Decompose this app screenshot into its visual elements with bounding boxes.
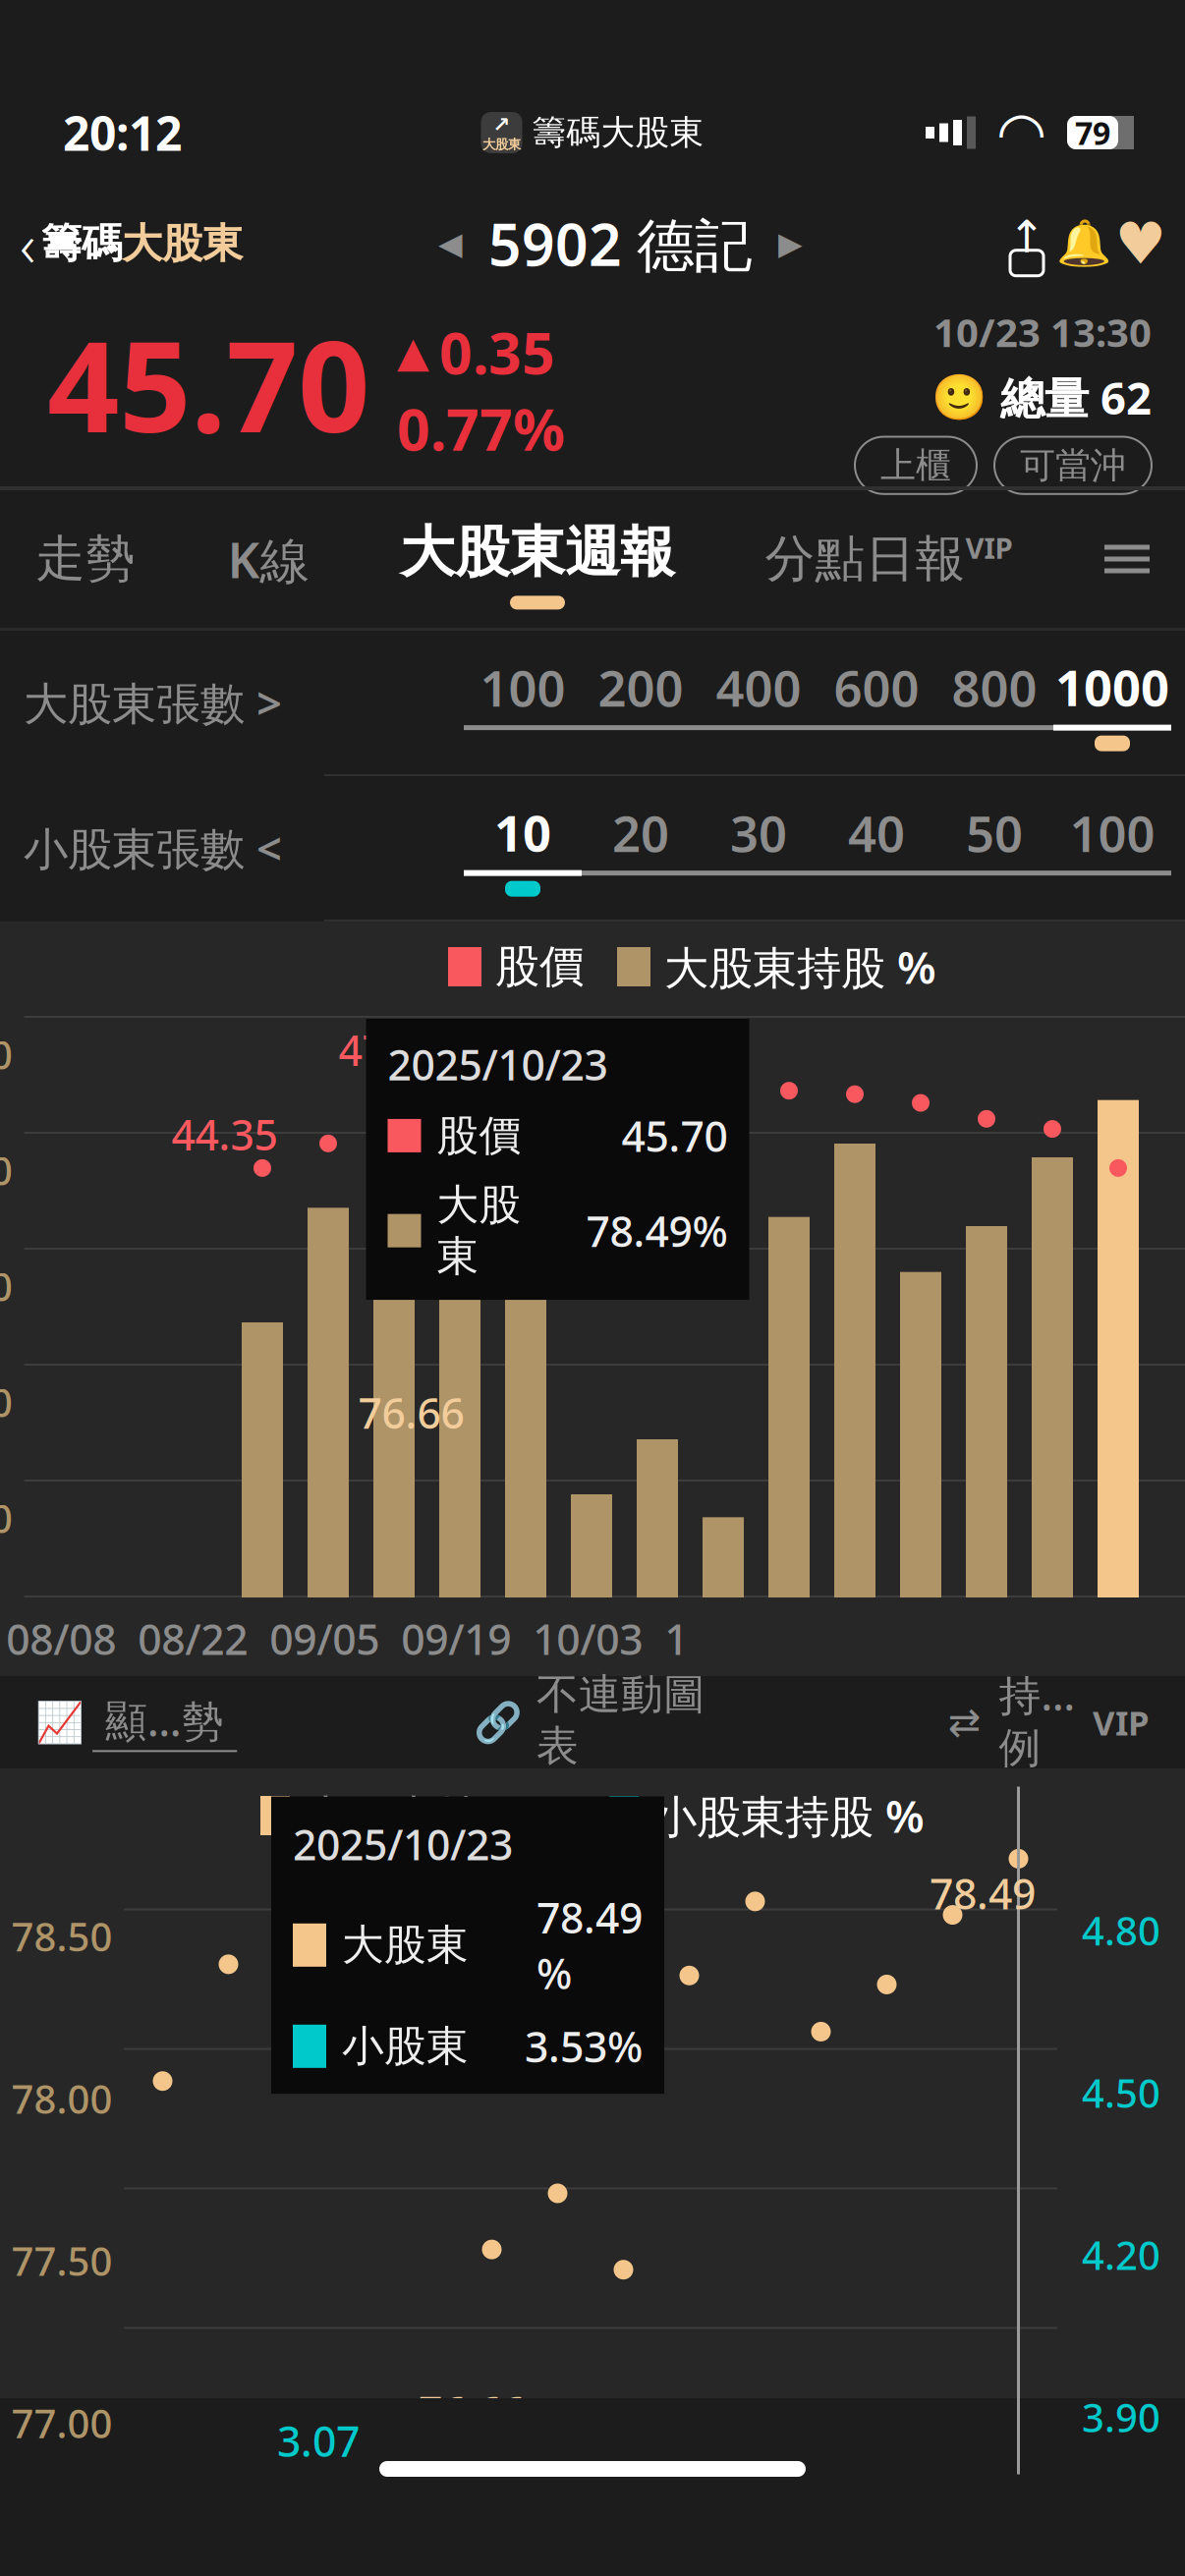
staticText: 0.77% [397,390,565,467]
staticText: 78.00 [11,2072,113,2125]
staticText: 分點日報 [765,528,965,590]
button[interactable]: Notifications [1055,212,1112,275]
staticText: 股價 [437,1110,521,1161]
staticText: VIP [1093,1700,1150,1745]
staticText: 78.49% [586,1203,728,1259]
staticText: ↑ [1008,212,1045,262]
staticText: 🔔 [1056,218,1111,269]
button[interactable]: Previous stock [423,208,479,279]
staticText: 79 [1075,112,1110,154]
button[interactable]: 分點日報 [753,513,1024,605]
staticText: 0.35 [439,314,555,390]
staticText: 44.35 [171,1106,278,1162]
staticText: 08/08 [6,1611,116,1667]
staticText: 10 [494,799,551,865]
staticText: 40 [848,800,905,866]
staticText: 77.00 [0,1376,13,1428]
staticText: ♥ [1115,211,1167,276]
staticText: 小股東張數 < [24,818,282,877]
staticText: 77.50 [11,2235,113,2287]
staticText: 小股東 [342,2021,469,2072]
button[interactable]: ‹ [0,192,243,295]
staticText: ⇄ [948,1700,981,1745]
button[interactable]: Menu [1093,525,1161,593]
staticText: 47.40 [339,1022,445,1077]
staticText: 10/23 13:30 [933,306,1152,358]
staticText: 顯…勢 [105,1692,224,1748]
staticText: 78.50 [0,1028,13,1080]
staticText: 大股東張數 > [24,673,282,732]
staticText: 4.50 [1082,2066,1160,2119]
staticText: 78.00 [0,1144,13,1196]
button[interactable]: ⇄ [948,1651,1150,1794]
button[interactable]: 100 [1053,800,1171,896]
staticText: ‹ [20,204,35,284]
staticText: ◀ [438,226,463,261]
staticText: 籌碼 [41,219,122,269]
button[interactable]: 50 [935,800,1053,896]
staticText: 09/19 [401,1611,511,1667]
staticText: ▶ [778,226,803,261]
staticText: ◠ [999,100,1044,165]
staticText: 大股東 [482,136,521,153]
button[interactable]: 大股東週報 [390,509,685,610]
staticText: 30 [730,800,787,866]
staticText: 5902 德記 [488,205,753,282]
staticText: 08/22 [138,1611,248,1667]
button[interactable]: 800 [935,654,1053,751]
staticText: 20 [612,800,669,866]
button[interactable]: 20 [582,800,700,896]
button[interactable]: 40 [818,800,935,896]
staticText: 🔗 [474,1700,523,1745]
staticText: 持…例 [999,1667,1075,1774]
staticText: 20:12 [63,101,182,164]
staticText: 50 [966,800,1023,866]
staticText: 小股東持股 % [652,1786,925,1845]
staticText: 大股東持股 % [664,937,936,996]
staticText: 可當沖 [1020,444,1126,487]
staticText: 籌碼大股東 [532,112,704,154]
staticText: 600 [834,654,919,720]
staticText: 45.70 [47,300,369,467]
button[interactable]: 600 [818,654,935,751]
staticText: 3.90 [1082,2391,1160,2443]
button[interactable]: Add to favorites [1112,212,1169,275]
staticText: 大股東持股 % [304,1786,576,1845]
button[interactable]: 10 [464,799,582,897]
staticText: 🙂 [931,372,987,423]
staticText: 78.50 [11,1910,113,1962]
button[interactable]: 200 [582,654,700,751]
button[interactable]: Next stock [762,208,818,279]
staticText: 1000 [1055,654,1169,720]
button[interactable]: Share [998,212,1055,275]
staticText: 股價 [495,939,584,994]
staticText: 100 [1070,800,1155,866]
staticText: 3.53% [525,2018,643,2074]
button[interactable]: 30 [700,800,818,896]
staticText: 2025/10/23 [388,1036,608,1092]
button[interactable]: 1000 [1053,654,1171,751]
staticText: 1 [664,1611,688,1667]
staticText: 大股東 [122,219,243,269]
staticText: 4.80 [1082,1904,1160,1956]
button[interactable]: 可當沖 [994,437,1152,494]
staticText: 76.50 [0,1492,13,1544]
staticText: 2025/10/23 [293,1816,513,1872]
staticText: 大股東 [437,1179,521,1282]
button[interactable]: 上櫃 [855,437,977,494]
button[interactable]: 📈 [35,1677,237,1768]
button[interactable]: 🔗 [474,1653,711,1791]
button[interactable]: 400 [700,654,818,751]
staticText: 09/05 [269,1611,379,1667]
staticText: 不連動圖表 [536,1669,705,1772]
button[interactable]: K線 [216,510,322,608]
staticText: ↗ [493,113,510,136]
staticText: 400 [716,654,801,720]
staticText: 總量 62 [1000,368,1152,427]
button[interactable]: 100 [464,654,582,751]
staticText: 100 [480,654,565,720]
button[interactable]: 走勢 [24,513,147,605]
staticText: 78.49 [930,1865,1036,1921]
staticText: 76.66 [358,1385,464,1440]
staticText: 200 [598,654,683,720]
